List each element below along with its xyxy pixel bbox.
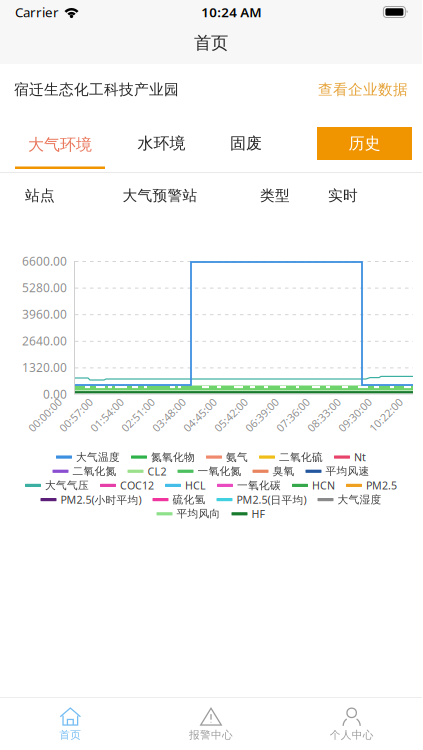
button[interactable]: 报警中心: [141, 698, 281, 750]
button[interactable]: 水环境: [120, 115, 203, 172]
staticText: 大气环境: [28, 135, 92, 154]
button[interactable]: 首页: [0, 698, 141, 750]
staticText: 08:33:00: [303, 408, 345, 422]
staticText: Nt: [354, 450, 366, 464]
staticText: 实时: [328, 186, 358, 204]
staticText: CL2: [147, 464, 166, 478]
staticText: 6600.00: [22, 253, 67, 269]
staticText: 查看企业数据: [318, 80, 408, 98]
button[interactable]: 历史: [317, 127, 412, 160]
button[interactable]: 个人中心: [281, 698, 422, 750]
staticText: 臭氧: [272, 465, 294, 478]
staticText: 大气湿度: [337, 493, 381, 506]
button[interactable]: 大气环境: [0, 115, 120, 172]
staticText: 首页: [194, 32, 228, 54]
staticText: 01:54:00: [86, 408, 128, 422]
staticText: 3960.00: [22, 306, 67, 322]
staticText: 站点: [25, 186, 55, 204]
staticText: 06:39:00: [241, 408, 283, 422]
staticText: 历史: [348, 134, 380, 153]
staticText: 报警中心: [189, 728, 233, 741]
staticText: Carrier: [15, 3, 59, 21]
staticText: 首页: [59, 728, 81, 741]
staticText: 大气气压: [45, 479, 89, 492]
staticText: 0.00: [43, 386, 67, 402]
staticText: HCN: [312, 478, 335, 492]
staticText: 硫化氢: [172, 493, 205, 506]
staticText: 个人中心: [330, 728, 374, 741]
staticText: 一氧化氮: [197, 465, 241, 478]
staticText: 10:22:00: [365, 408, 407, 422]
staticText: 二氧化氮: [72, 465, 116, 478]
staticText: 平均风速: [325, 465, 369, 478]
staticText: 09:30:00: [334, 408, 376, 422]
staticText: 02:51:00: [117, 408, 159, 422]
staticText: 1320.00: [22, 359, 67, 375]
button[interactable]: 查看企业数据: [318, 80, 408, 98]
button[interactable]: 固废: [203, 115, 289, 172]
staticText: 05:42:00: [210, 408, 252, 422]
staticText: 00:57:00: [55, 408, 97, 422]
staticText: HF: [251, 507, 265, 521]
staticText: 氮氧化物: [151, 450, 195, 464]
staticText: 10:24 AM: [201, 3, 261, 21]
staticText: HCL: [185, 478, 206, 492]
staticText: PM2.5(小时平均): [60, 492, 141, 507]
staticText: 氨气: [226, 450, 248, 464]
staticText: 04:45:00: [179, 408, 221, 422]
staticText: 二氧化硫: [279, 450, 323, 464]
staticText: 00:00:00: [24, 408, 66, 422]
staticText: PM2.5: [366, 478, 397, 492]
staticText: 大气温度: [76, 450, 120, 464]
staticText: 固废: [230, 134, 262, 153]
staticText: 类型: [260, 186, 290, 204]
staticText: 水环境: [137, 134, 185, 153]
staticText: 一氧化碳: [237, 479, 281, 492]
staticText: PM2.5(日平均): [236, 492, 306, 507]
staticText: COC12: [120, 478, 154, 492]
staticText: 平均风向: [176, 507, 220, 520]
staticText: 宿迁生态化工科技产业园: [14, 80, 179, 98]
staticText: 5280.00: [22, 280, 67, 295]
staticText: 03:48:00: [148, 408, 190, 422]
staticText: 07:36:00: [272, 408, 314, 422]
staticText: 大气预警站: [122, 186, 197, 204]
staticText: 2640.00: [22, 333, 67, 349]
